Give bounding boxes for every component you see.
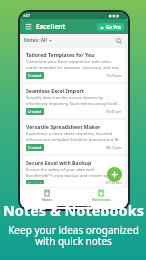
staticText: 10:24 pm bbox=[106, 73, 122, 78]
staticText: Ensure the safety of your data with Exce… bbox=[26, 167, 122, 178]
staticText: 07:30 pm bbox=[106, 180, 122, 184]
button[interactable]: Seamless Excel Import bbox=[23, 84, 125, 118]
button[interactable]: Tailored Templates for You bbox=[23, 48, 125, 82]
button[interactable]: Notes: All bbox=[24, 35, 52, 46]
button[interactable]: Notebooks bbox=[74, 188, 128, 204]
staticText: Created bbox=[28, 109, 42, 114]
button[interactable]: Versatile Spreadsheet Maker bbox=[23, 120, 125, 154]
button[interactable]: Menu bbox=[24, 22, 33, 31]
staticText: Excellent bbox=[36, 22, 66, 31]
staticText: Simplify data transfer across devices by… bbox=[26, 95, 122, 106]
button[interactable]: Secure Excel with Backup bbox=[23, 156, 125, 187]
staticText: Notes: All bbox=[24, 37, 47, 44]
staticText: Notes bbox=[42, 197, 53, 202]
staticText: Notes & Notebooks bbox=[3, 200, 144, 220]
staticText: Customize your Excel experience with tai… bbox=[26, 59, 122, 70]
staticText: Created bbox=[28, 181, 42, 183]
staticText: Versatile Spreadsheet Maker bbox=[26, 123, 101, 130]
staticText: Created bbox=[28, 73, 42, 78]
staticText: Notebooks bbox=[92, 197, 111, 202]
button[interactable]: Notes bbox=[20, 188, 74, 204]
button[interactable]: Search bbox=[114, 36, 124, 46]
staticText: Go Pro bbox=[106, 24, 121, 30]
staticText: Created bbox=[28, 145, 42, 150]
staticText: Experience a more share seamless, booste… bbox=[26, 131, 122, 142]
button[interactable]: New note bbox=[107, 167, 122, 182]
staticText: 09:45 pm bbox=[106, 109, 122, 114]
staticText: Keep your ideas oroganized with quick no… bbox=[8, 223, 139, 248]
button[interactable]: Go Pro bbox=[97, 23, 124, 31]
staticText: Secure Excel with Backup bbox=[26, 159, 92, 166]
staticText: Seamless Excel Import bbox=[26, 87, 84, 94]
staticText: Tailored Templates for You bbox=[26, 51, 95, 58]
staticText: 3:07 bbox=[23, 13, 30, 18]
staticText: 08:12 pm bbox=[106, 145, 122, 150]
